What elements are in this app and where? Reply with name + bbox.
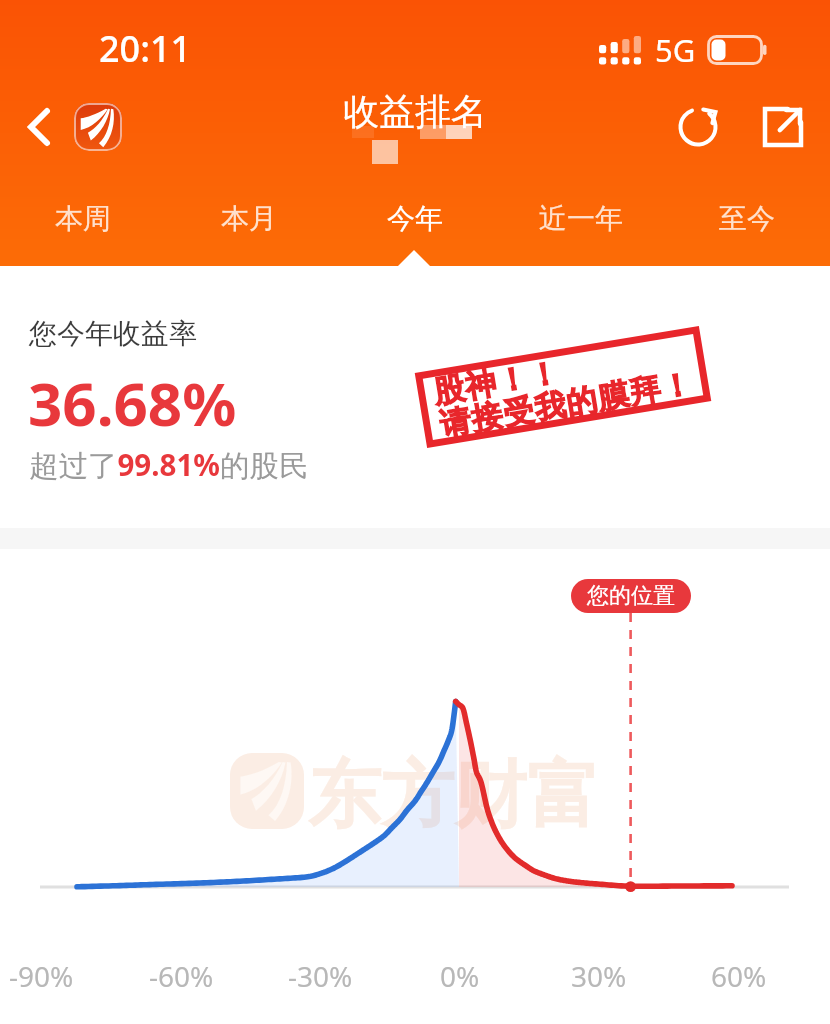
staticText: 今年 [387,201,443,236]
button[interactable]: 本周 [0,180,166,256]
button[interactable]: 至今 [664,180,830,256]
staticText: 您今年收益率 [29,316,197,351]
button[interactable]: Refresh [669,98,727,156]
staticText: 本周 [55,201,111,236]
button[interactable]: App icon [74,103,122,151]
staticText: -30% [288,957,353,995]
staticText: 您的位置 [587,582,675,610]
staticText: 近一年 [539,201,623,236]
staticText: 本月 [221,201,277,236]
staticText: 收益排名 [343,89,487,131]
button[interactable]: 近一年 [498,180,664,256]
staticText: -60% [149,957,214,995]
staticText: 0% [440,957,480,995]
staticText: 36.68% [28,362,237,444]
staticText: 东方财富 [308,750,600,842]
button[interactable]: 本月 [166,180,332,256]
button[interactable]: 今年 [332,180,498,256]
staticText: 至今 [719,201,775,236]
button[interactable]: Share [754,98,812,156]
staticText: 60% [711,957,767,995]
staticText: -90% [9,957,74,995]
staticText: 20:11 [99,24,192,73]
staticText: 股神！！ [430,353,563,412]
button[interactable]: Back [16,104,62,150]
staticText: 请接受我的膜拜！ [436,364,695,444]
staticText: 5G [655,29,696,71]
staticText: 30% [571,957,627,995]
button[interactable]: 您的位置 [571,579,691,613]
staticText: 超过了99.81%的股民 [29,444,309,484]
